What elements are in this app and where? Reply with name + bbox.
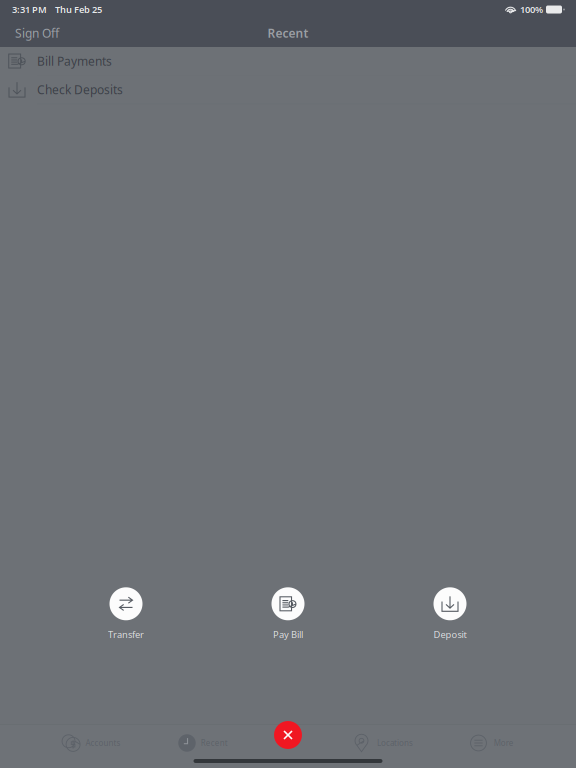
staticText: Sign Off <box>15 25 59 41</box>
staticText: Transfer <box>108 628 144 641</box>
button[interactable]: Pay Bill <box>228 587 348 641</box>
staticText: Accounts <box>85 738 120 748</box>
button[interactable]: Recent <box>173 729 233 757</box>
button[interactable]: Accounts <box>56 729 125 757</box>
button[interactable]: Bill Payments <box>0 47 576 75</box>
staticText: Recent <box>201 738 228 748</box>
staticText: Thu Feb 25 <box>55 3 102 16</box>
button[interactable]: More <box>465 729 519 757</box>
button[interactable]: Transfer <box>66 587 186 641</box>
staticText: Check Deposits <box>37 82 123 97</box>
staticText: 100% <box>520 3 543 16</box>
staticText: Pay Bill <box>273 628 303 641</box>
staticText: 3:31 PM <box>12 3 47 16</box>
staticText: Locations <box>377 738 413 748</box>
staticText: More <box>494 738 514 748</box>
button[interactable]: Deposit <box>390 587 510 641</box>
button[interactable]: Locations <box>350 729 418 757</box>
button[interactable]: Close menu <box>272 719 304 751</box>
button[interactable]: Sign Off <box>0 19 74 47</box>
staticText: Deposit <box>433 628 466 641</box>
staticText: Recent <box>267 25 308 41</box>
staticText: Bill Payments <box>37 53 112 69</box>
button[interactable]: Check Deposits <box>0 76 576 104</box>
